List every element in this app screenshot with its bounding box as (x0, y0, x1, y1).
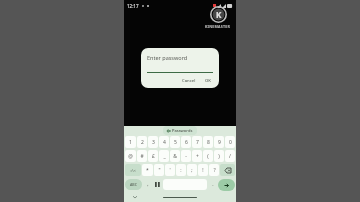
button[interactable]: 3 (148, 136, 158, 148)
staticText: ( (207, 153, 209, 160)
button[interactable]: : (176, 164, 186, 176)
staticText: : (180, 167, 182, 174)
staticText: £ (152, 153, 155, 160)
button[interactable]: 1 (125, 136, 136, 148)
staticText: 2 (141, 139, 144, 146)
button[interactable]: OK (203, 77, 213, 85)
staticText: 12:17 (127, 3, 139, 9)
staticText: ) (218, 153, 220, 160)
button[interactable]: ' (165, 164, 175, 176)
staticText: K (216, 9, 222, 20)
button[interactable]: 5 (170, 136, 180, 148)
button[interactable]: & (170, 150, 180, 162)
button[interactable]: 4 (159, 136, 169, 148)
staticText: 7 (196, 139, 199, 146)
staticText: OK (205, 78, 211, 84)
staticText: 1 (129, 139, 132, 146)
staticText: 6 (185, 139, 188, 146)
button[interactable]: ABC (125, 179, 142, 190)
button[interactable]: Enter (218, 179, 235, 191)
button[interactable]: - (181, 150, 191, 162)
staticText: ' (169, 167, 171, 174)
button[interactable]: * (142, 164, 153, 176)
staticText: & (173, 153, 177, 160)
button[interactable]: _ (159, 150, 169, 162)
staticText: - (185, 153, 187, 160)
staticText: Cancel (182, 78, 196, 84)
staticText: " (158, 167, 161, 174)
staticText: @ (128, 153, 133, 160)
staticText: * (146, 167, 149, 174)
staticText: ; (191, 167, 193, 174)
button[interactable]: " (154, 164, 164, 176)
staticText: KINEMASTER (205, 24, 231, 29)
button[interactable]: ( (203, 150, 213, 162)
staticText: 0 (229, 139, 232, 146)
button[interactable]: 6 (181, 136, 191, 148)
button[interactable]: Hide keyboard (132, 194, 138, 200)
button[interactable]: £ (148, 150, 158, 162)
staticText: ABC (130, 182, 137, 187)
button[interactable]: . (208, 178, 217, 191)
button[interactable]: 7 (192, 136, 202, 148)
staticText: 4 (163, 139, 166, 146)
button[interactable]: 2 (137, 136, 147, 148)
button[interactable]: Switch keyboard (153, 179, 162, 190)
button[interactable]: , (143, 178, 152, 191)
staticText: 3 (152, 139, 155, 146)
button[interactable]: Cancel (180, 77, 198, 85)
button[interactable]: ; (187, 164, 197, 176)
staticText: Passwords (172, 128, 193, 133)
button[interactable]: # (137, 150, 147, 162)
staticText: 5 (174, 139, 177, 146)
button[interactable]: ) (214, 150, 224, 162)
staticText: =\< (130, 168, 136, 173)
staticText: _ (163, 153, 166, 160)
button[interactable]: + (192, 150, 202, 162)
button[interactable]: =\< (125, 164, 141, 176)
button[interactable]: Backspace (220, 164, 235, 176)
staticText: , (147, 181, 149, 188)
button[interactable]: / (225, 150, 235, 162)
button[interactable]: 0 (225, 136, 235, 148)
staticText: 9 (218, 139, 221, 146)
staticText: + (196, 153, 199, 160)
button[interactable]: 8 (203, 136, 213, 148)
staticText: 8 (207, 139, 210, 146)
button[interactable]: @ (125, 150, 136, 162)
staticText: / (229, 153, 231, 160)
button[interactable]: Passwords (163, 126, 197, 135)
staticText: ? (213, 167, 216, 174)
staticText: . (212, 181, 214, 188)
staticText: Enter password (147, 54, 188, 61)
button[interactable]: ! (198, 164, 208, 176)
staticText: # (140, 153, 144, 160)
button[interactable]: 9 (214, 136, 224, 148)
staticText: ! (202, 167, 204, 174)
button[interactable]: ? (209, 164, 219, 176)
